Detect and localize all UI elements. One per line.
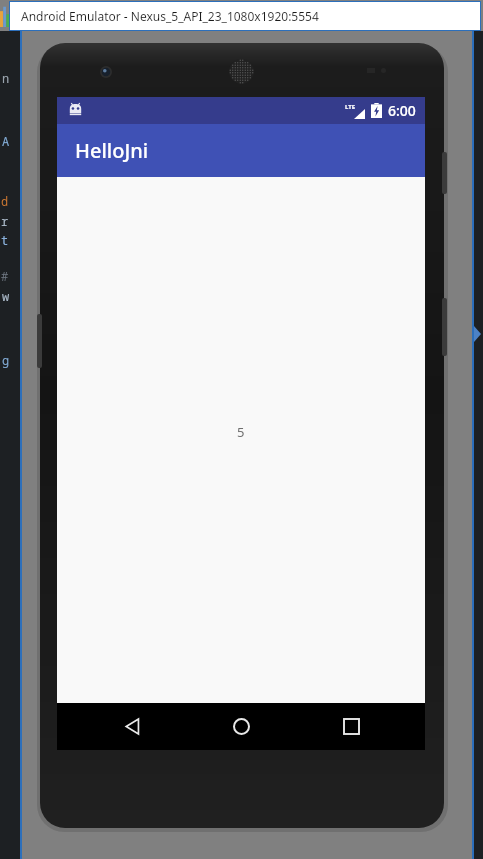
staticText: Android Emulator - Nexus_5_API_23_1080x1… [21,8,319,24]
staticText: t [1,232,9,248]
staticText: n [2,70,10,86]
staticText: w [2,288,10,304]
staticText: LTE [345,103,356,111]
staticText: HelloJni [75,137,149,164]
staticText: # [1,268,9,284]
button[interactable]: Home [206,703,276,750]
staticText: d [1,193,9,209]
button[interactable]: Android Emulator - Nexus_5_API_23_1080x1… [9,2,481,30]
staticText: 5 [237,423,245,441]
button[interactable]: Recent apps [316,703,386,750]
button[interactable]: Back [97,703,167,750]
staticText: g [2,352,10,368]
staticText: r [1,213,9,229]
staticText: 6:00 [388,101,416,120]
staticText: A [2,133,10,149]
button[interactable]: HelloJni [57,124,425,177]
